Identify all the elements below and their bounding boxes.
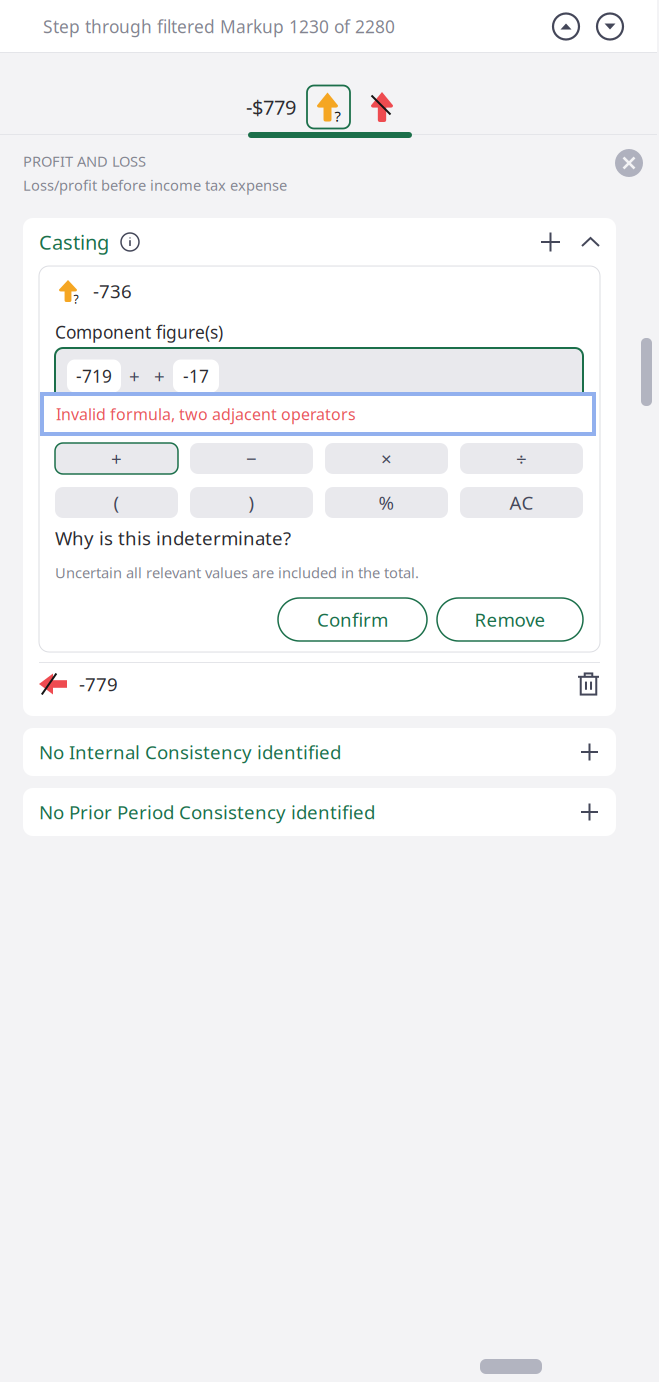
staticText: Confirm (317, 607, 388, 632)
staticText: -736 (93, 279, 132, 303)
button[interactable]: Delete (578, 672, 599, 696)
staticText: ? (334, 106, 340, 126)
staticText: Loss/profit before income tax expense (23, 175, 287, 195)
button[interactable]: ( (55, 487, 178, 518)
staticText: Step through filtered Markup 1230 of 228… (43, 15, 395, 38)
button[interactable]: ) (190, 487, 313, 518)
button[interactable]: Add (541, 232, 560, 251)
button[interactable]: − (190, 443, 313, 474)
button[interactable]: + (55, 443, 178, 474)
staticText: − (246, 446, 257, 471)
button[interactable]: × (325, 443, 448, 474)
staticText: Component figure(s) (55, 320, 223, 343)
staticText: × (381, 446, 392, 471)
staticText: No Internal Consistency identified (39, 740, 341, 764)
staticText: ? (73, 291, 78, 307)
button[interactable]: Collapse (582, 238, 599, 246)
staticText: No Prior Period Consistency identified (39, 800, 375, 824)
staticText: -$779 (246, 94, 296, 120)
button[interactable]: Previous (553, 13, 579, 39)
staticText: Uncertain all relevant values are includ… (55, 563, 419, 582)
staticText: % (378, 490, 394, 515)
staticText: ( (113, 490, 119, 515)
button[interactable]: Remove (437, 598, 583, 641)
button[interactable]: No Internal Consistency identified (23, 728, 616, 776)
staticText: ÷ (516, 446, 527, 471)
staticText: Why is this indeterminate? (55, 526, 291, 550)
staticText: -779 (79, 672, 118, 696)
staticText: + (129, 364, 140, 388)
button[interactable]: AC (460, 487, 583, 518)
button[interactable]: Confirm (278, 598, 427, 641)
staticText: -719 (76, 364, 112, 387)
button[interactable]: % (325, 487, 448, 518)
staticText: PROFIT AND LOSS (23, 151, 146, 171)
staticText: Casting (39, 229, 109, 255)
staticText: AC (509, 490, 533, 515)
button[interactable]: Next (597, 13, 623, 39)
button[interactable]: No Prior Period Consistency identified (23, 788, 616, 836)
staticText: + (111, 446, 122, 471)
button[interactable]: ÷ (460, 443, 583, 474)
staticText: Invalid formula, two adjacent operators (56, 403, 356, 425)
staticText: ) (248, 490, 254, 515)
staticText: -17 (183, 364, 209, 387)
button[interactable]: Close (615, 149, 643, 177)
staticText: + (154, 364, 165, 388)
staticText: Remove (474, 607, 545, 632)
